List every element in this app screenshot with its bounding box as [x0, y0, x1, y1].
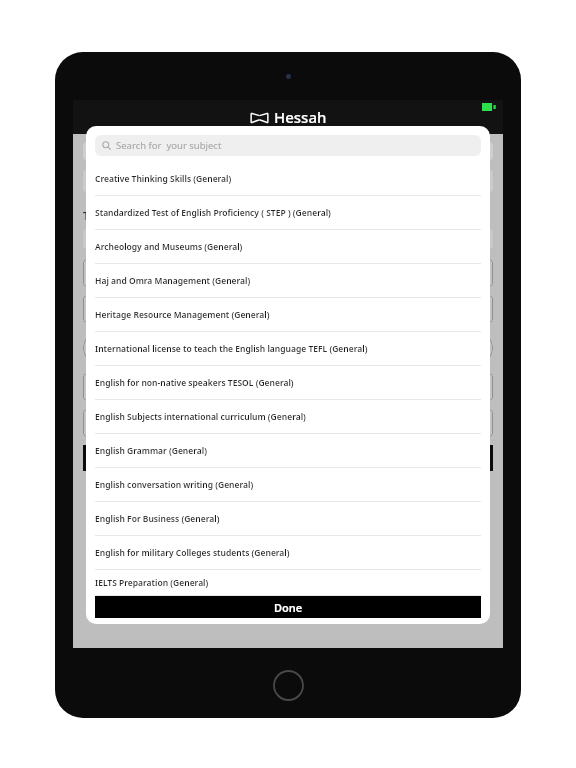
other: Battery — [482, 103, 496, 111]
staticText: English for military Colleges students (… — [95, 547, 290, 559]
staticText: English Grammar (General) — [95, 445, 207, 457]
staticText: English for non-native speakers TESOL (G… — [95, 377, 294, 389]
staticText: English Subjects international curriculu… — [95, 411, 306, 423]
button[interactable]: International license to teach the Engli… — [86, 332, 490, 366]
staticText: Done — [274, 600, 303, 615]
button[interactable]: English Grammar (General) — [86, 434, 490, 468]
button[interactable] — [83, 445, 493, 471]
staticText: Search for your subject — [116, 139, 222, 152]
button[interactable]: English conversation writing (General) — [86, 468, 490, 502]
staticText: Hessah — [274, 107, 327, 127]
staticText: To — [83, 208, 96, 223]
other: Home — [273, 670, 304, 701]
staticText: IELTS Preparation (General) — [95, 577, 209, 589]
button[interactable]: Haj and Omra Management (General) — [86, 264, 490, 298]
staticText: Haj and Omra Management (General) — [95, 275, 251, 287]
staticText: Creative Thinking Skills (General) — [95, 173, 232, 185]
button[interactable]: Standardized Test of English Proficiency… — [86, 196, 490, 230]
button[interactable] — [83, 259, 493, 287]
button[interactable] — [83, 295, 493, 323]
staticText: Heritage Resource Management (General) — [95, 309, 270, 321]
button[interactable] — [83, 409, 493, 437]
staticText: Standardized Test of English Proficiency… — [95, 207, 331, 219]
button[interactable]: English for non-native speakers TESOL (G… — [86, 366, 490, 400]
button[interactable]: IELTS Preparation (General) — [86, 570, 490, 596]
button[interactable]: Search for your subject — [95, 135, 481, 156]
button[interactable]: Creative Thinking Skills (General) — [86, 162, 490, 196]
button[interactable]: Heritage Resource Management (General) — [86, 298, 490, 332]
staticText: Archeology and Museums (General) — [95, 241, 243, 253]
button[interactable]: Archeology and Museums (General) — [86, 230, 490, 264]
button[interactable]: Done — [95, 596, 481, 618]
staticText: International license to teach the Engli… — [95, 343, 368, 355]
button[interactable]: English for military Colleges students (… — [86, 536, 490, 570]
button[interactable]: English Subjects international curriculu… — [86, 400, 490, 434]
button[interactable]: English For Business (General) — [86, 502, 490, 536]
staticText: English conversation writing (General) — [95, 479, 254, 491]
button[interactable] — [83, 331, 493, 365]
button[interactable] — [83, 373, 493, 401]
staticText: English For Business (General) — [95, 513, 220, 525]
